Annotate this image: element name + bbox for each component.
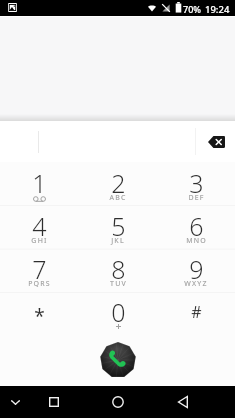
staticText: 5: [111, 209, 126, 243]
button[interactable]: 5: [79, 205, 157, 249]
button[interactable]: Hide keyboard: [0, 386, 30, 418]
staticText: GHI: [31, 236, 48, 246]
staticText: 4: [32, 209, 47, 243]
button[interactable]: Recents: [30, 386, 77, 418]
staticText: 8: [111, 252, 126, 286]
button[interactable]: #: [157, 291, 235, 335]
staticText: 2: [111, 166, 126, 200]
button[interactable]: 2: [79, 162, 157, 206]
staticText: 1: [32, 166, 47, 200]
button[interactable]: *: [0, 291, 79, 335]
staticText: 0: [111, 295, 126, 329]
staticText: 6: [189, 209, 204, 243]
button[interactable]: Backspace: [197, 121, 235, 162]
staticText: 9: [189, 252, 204, 286]
staticText: 7: [32, 252, 47, 286]
button[interactable]: 9: [157, 248, 235, 292]
button[interactable]: 3: [157, 162, 235, 206]
button[interactable]: 0: [79, 291, 157, 335]
button[interactable]: Call: [100, 342, 136, 378]
staticText: MNO: [186, 236, 207, 246]
staticText: 19:24: [205, 3, 230, 16]
button[interactable]: 6: [157, 205, 235, 249]
staticText: WXYZ: [184, 279, 208, 289]
staticText: *: [34, 303, 45, 329]
button[interactable]: Back: [158, 386, 207, 418]
staticText: #: [191, 301, 202, 323]
staticText: 3: [189, 166, 204, 200]
button[interactable]: Home: [77, 386, 158, 418]
button[interactable]: 7: [0, 248, 79, 292]
button[interactable]: 8: [79, 248, 157, 292]
staticText: 70%: [183, 3, 201, 15]
staticText: DEF: [188, 193, 205, 203]
staticText: TUV: [110, 279, 127, 289]
staticText: ABC: [109, 193, 127, 203]
button[interactable]: 1: [0, 162, 79, 206]
staticText: PQRS: [28, 279, 51, 289]
button[interactable]: 4: [0, 205, 79, 249]
staticText: JKL: [111, 236, 125, 246]
